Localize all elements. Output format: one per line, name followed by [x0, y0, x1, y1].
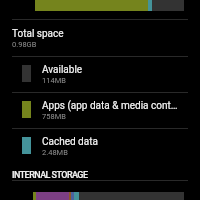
staticText: 0.98GB [12, 40, 37, 49]
button[interactable]: Total space [12, 28, 64, 49]
button[interactable]: Available [0, 56, 200, 92]
staticText: 2.48MB [42, 148, 68, 157]
staticText: 114MB [42, 76, 66, 85]
button[interactable]: Cached data [0, 128, 200, 164]
staticText: 758MB [42, 112, 66, 121]
staticText: Apps (app data & media cont… [42, 100, 178, 112]
staticText: Available [42, 64, 83, 76]
button[interactable]: Apps (app data & media cont… [0, 92, 200, 128]
staticText: Total space [12, 28, 64, 40]
staticText: Cached data [42, 136, 98, 148]
staticText: INTERNAL STORAGE [12, 170, 88, 181]
